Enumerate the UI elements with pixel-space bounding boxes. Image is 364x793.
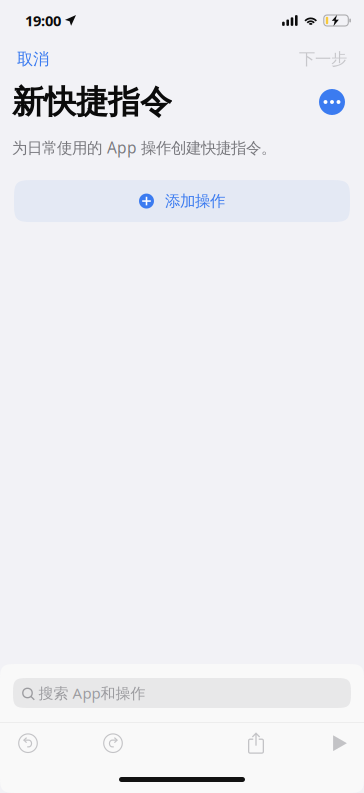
button[interactable]: 分享 xyxy=(236,724,276,762)
button[interactable]: 撤销 xyxy=(8,724,48,762)
staticText: 下一步 xyxy=(299,49,347,69)
button[interactable]: 搜索 App和操作 xyxy=(13,678,351,708)
button[interactable]: 下一步 xyxy=(287,45,364,73)
button[interactable]: 重做 xyxy=(93,724,133,762)
staticText: 取消 xyxy=(17,49,49,69)
button[interactable]: 添加操作 xyxy=(14,180,350,222)
button[interactable]: 运行 xyxy=(320,724,360,762)
staticText: 新快捷指令 xyxy=(12,82,172,122)
button[interactable]: 更多 xyxy=(319,89,345,115)
staticText: 搜索 App和操作 xyxy=(38,683,145,703)
button[interactable]: 取消 xyxy=(0,45,61,73)
staticText: 19:00 xyxy=(25,10,61,30)
staticText: 为日常使用的 App 操作创建快捷指令。 xyxy=(12,137,276,158)
staticText: 添加操作 xyxy=(165,191,225,211)
